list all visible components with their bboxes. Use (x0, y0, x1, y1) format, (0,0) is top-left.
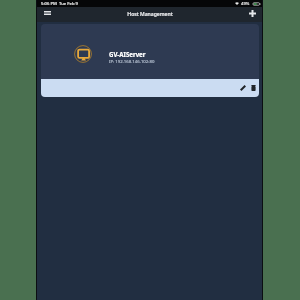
staticText: IP: 192.168.146.102:80 (109, 58, 155, 64)
staticText: 5:06 PM (41, 1, 57, 7)
button[interactable]: Delete (248, 81, 258, 95)
button[interactable]: Menu (42, 7, 52, 21)
button[interactable]: GV-AIServer (41, 24, 259, 79)
button[interactable]: Edit (238, 81, 248, 95)
staticText: GV-AIServer (109, 50, 146, 58)
button[interactable]: Add host (247, 7, 258, 21)
staticText: 49% (241, 1, 250, 7)
staticText: Tue Feb 9 (59, 1, 78, 7)
staticText: Host Management (127, 11, 173, 18)
